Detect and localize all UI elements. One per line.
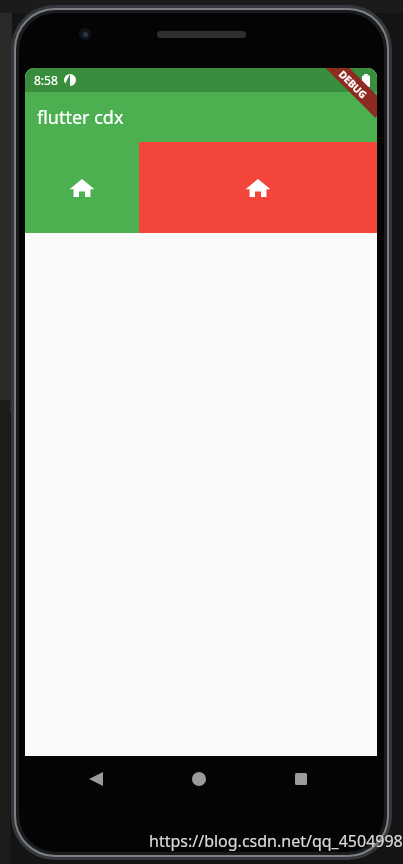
button[interactable]: Home	[176, 756, 222, 802]
staticText: 8:58	[34, 72, 58, 88]
button[interactable]: Recent apps	[278, 756, 324, 802]
staticText: https://blog.csdn.net/qq_45049981	[149, 830, 403, 852]
staticText: DEBUG	[336, 68, 370, 101]
button[interactable]: Home	[139, 142, 377, 233]
button[interactable]: Home	[25, 142, 139, 233]
button[interactable]: Back	[73, 756, 119, 802]
staticText: flutter cdx	[37, 105, 124, 130]
